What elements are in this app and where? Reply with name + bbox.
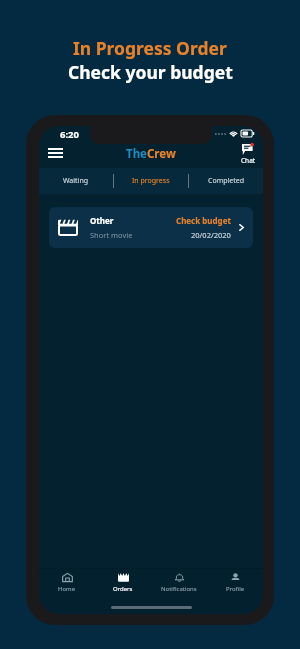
staticText: 20/02/2020 [191, 230, 231, 240]
button[interactable]: Profile [207, 573, 263, 593]
button[interactable]: Completed [189, 168, 263, 194]
staticText: Orders [113, 585, 133, 593]
button[interactable]: Orders [95, 573, 151, 593]
button[interactable]: Other [49, 207, 253, 248]
staticText: Profile [226, 585, 245, 593]
staticText: In Progress Order [73, 36, 227, 60]
staticText: Check your budget [68, 60, 233, 84]
button[interactable]: Waiting [39, 168, 113, 194]
staticText: Home [58, 585, 76, 593]
staticText: Notifications [161, 585, 197, 593]
button[interactable]: Chat [241, 144, 256, 165]
button[interactable]: Notifications [151, 573, 207, 593]
staticText: Short movie [90, 230, 133, 240]
staticText: 6:20 [60, 128, 79, 141]
button[interactable]: In progress [114, 168, 188, 194]
staticText: Waiting [63, 176, 89, 186]
button[interactable]: Menu [44, 142, 66, 164]
staticText: Other [90, 215, 114, 226]
staticText: TheCrew [126, 146, 176, 162]
button[interactable]: Home [39, 573, 95, 593]
staticText: Chat [241, 156, 256, 165]
staticText: Completed [208, 176, 245, 186]
staticText: In progress [132, 176, 170, 186]
staticText: Check budget [176, 215, 231, 226]
